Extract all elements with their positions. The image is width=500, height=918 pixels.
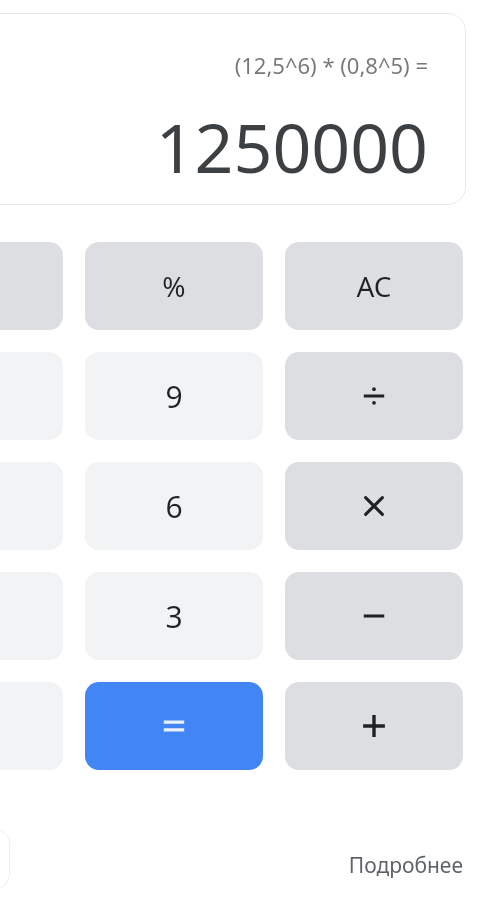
button[interactable] (0, 242, 63, 330)
button[interactable]: 9 (85, 352, 263, 440)
button[interactable]: Подробнее (283, 848, 463, 882)
button[interactable] (0, 13, 466, 205)
staticText: 6 (165, 486, 183, 527)
button[interactable]: AC (285, 242, 463, 330)
button[interactable]: Subtract (285, 572, 463, 660)
staticText: Подробнее (348, 851, 463, 880)
button[interactable]: Add (285, 682, 463, 770)
staticText: 9 (165, 376, 183, 417)
button[interactable]: Multiply (285, 462, 463, 550)
staticText: (12,5^6) * (0,8^5) = (234, 50, 428, 80)
button[interactable]: % (85, 242, 263, 330)
staticText: 3 (165, 596, 183, 637)
staticText: % (162, 267, 186, 305)
button[interactable]: Divide (285, 352, 463, 440)
staticText: 1250000 (155, 100, 428, 182)
button[interactable]: Equals (85, 682, 263, 770)
button[interactable]: 3 (85, 572, 263, 660)
staticText: AC (356, 267, 392, 305)
button[interactable]: 6 (85, 462, 263, 550)
